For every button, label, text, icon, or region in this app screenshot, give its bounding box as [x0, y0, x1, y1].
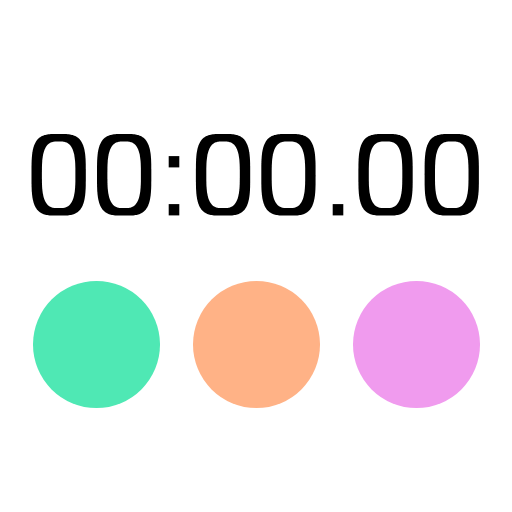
button[interactable]: Reset — [353, 281, 480, 408]
button[interactable]: Start — [33, 281, 160, 408]
button[interactable]: Lap — [193, 281, 320, 408]
